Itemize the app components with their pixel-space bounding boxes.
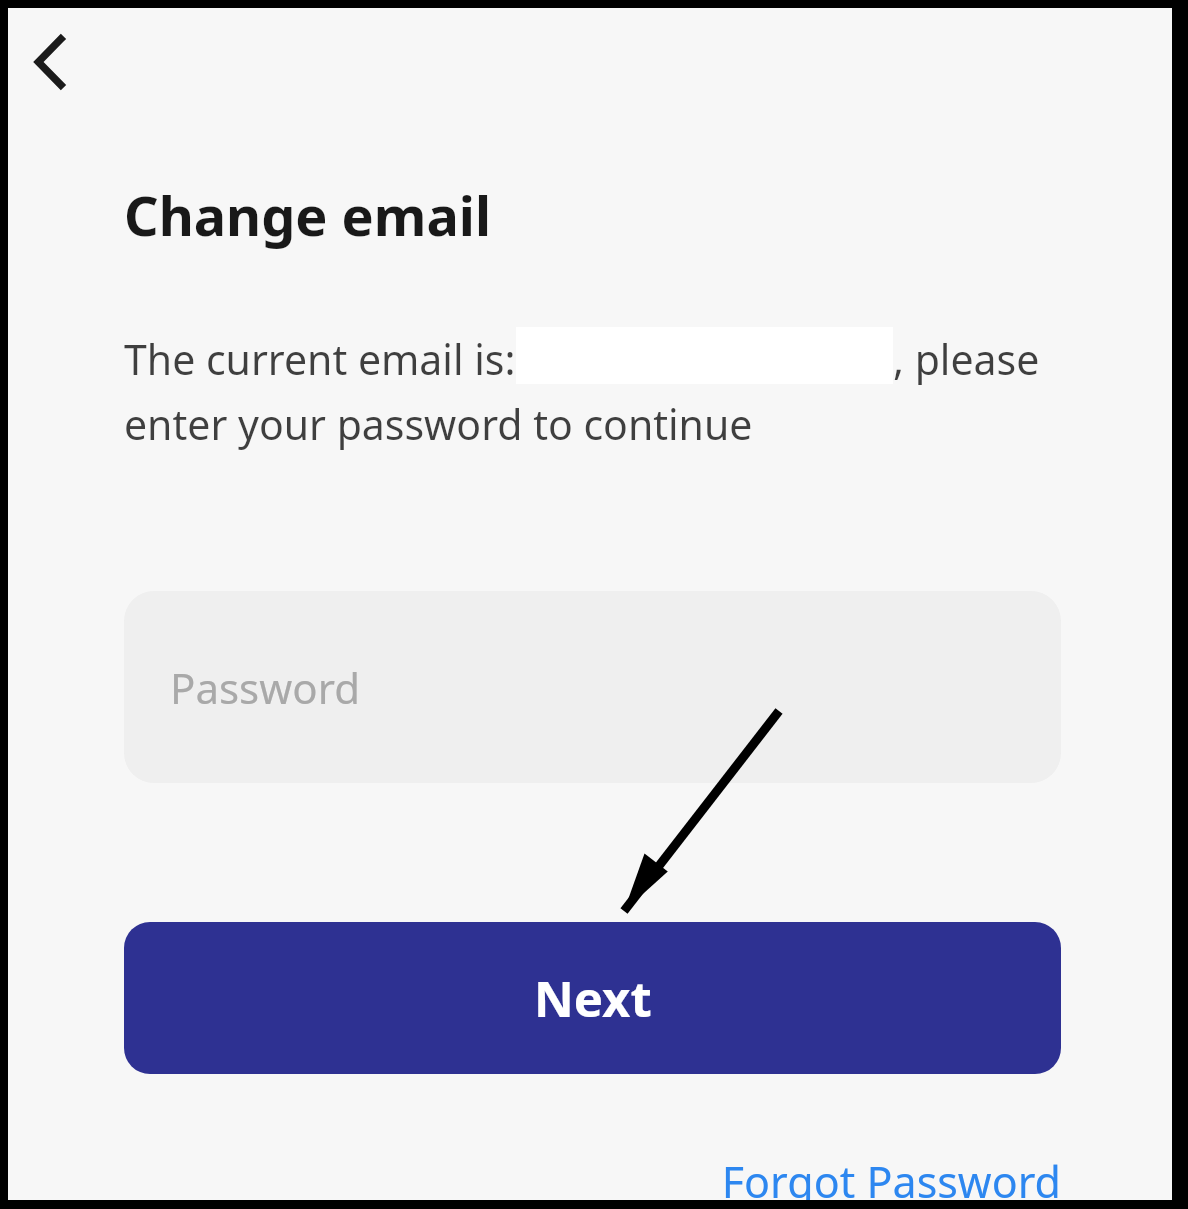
- staticText: , please: [893, 331, 1040, 387]
- staticText: Change email: [124, 178, 492, 252]
- button[interactable]: Password: [124, 591, 1061, 783]
- staticText: Forgot Password: [721, 1152, 1061, 1200]
- button[interactable]: Back: [18, 30, 82, 94]
- button[interactable]: Forgot Password: [721, 1152, 1061, 1200]
- staticText: enter your password to continue: [124, 396, 753, 452]
- staticText: The current email is:: [124, 331, 516, 387]
- staticText: Password: [170, 659, 360, 716]
- button[interactable]: Next: [124, 922, 1061, 1074]
- staticText: Next: [534, 965, 652, 1032]
